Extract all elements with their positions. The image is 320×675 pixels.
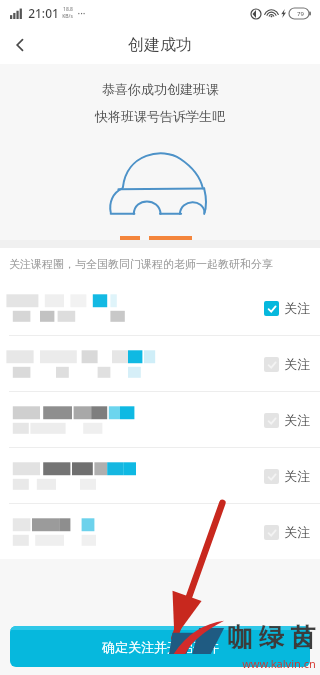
- button[interactable]: 关注: [0, 336, 320, 391]
- staticText: 确定关注并开启开并: [102, 639, 219, 655]
- button[interactable]: 关注: [264, 356, 310, 372]
- button[interactable]: 关注: [0, 448, 320, 503]
- button[interactable]: 关注: [264, 468, 310, 484]
- button[interactable]: 关注: [0, 280, 320, 335]
- button[interactable]: 确定关注并开启开并: [10, 626, 310, 667]
- staticText: 关注课程圈，与全国教同门课程的老师一起教研和分享: [9, 257, 273, 271]
- staticText: KB/s: [62, 13, 73, 20]
- button[interactable]: 关注: [264, 524, 310, 540]
- staticText: 恭喜你成功创建班课: [102, 81, 219, 97]
- staticText: ···: [77, 6, 86, 20]
- button[interactable]: 关注: [264, 300, 310, 316]
- staticText: 关注: [284, 356, 310, 372]
- staticText: 18.8: [63, 6, 73, 13]
- staticText: 关注: [284, 468, 310, 484]
- staticText: 关注: [284, 300, 310, 316]
- staticText: 创建成功: [128, 35, 192, 55]
- staticText: 21:01: [28, 5, 59, 21]
- button[interactable]: 关注: [264, 412, 310, 428]
- staticText: www.kalvin.cn: [242, 656, 316, 671]
- button[interactable]: Back: [0, 26, 40, 64]
- staticText: 79: [297, 10, 304, 18]
- staticText: 咖 绿 茵: [227, 619, 316, 653]
- staticText: 关注: [284, 412, 310, 428]
- staticText: 关注: [284, 524, 310, 540]
- staticText: 快将班课号告诉学生吧: [95, 108, 225, 124]
- button[interactable]: 关注: [0, 392, 320, 447]
- button[interactable]: 关注: [0, 504, 320, 559]
